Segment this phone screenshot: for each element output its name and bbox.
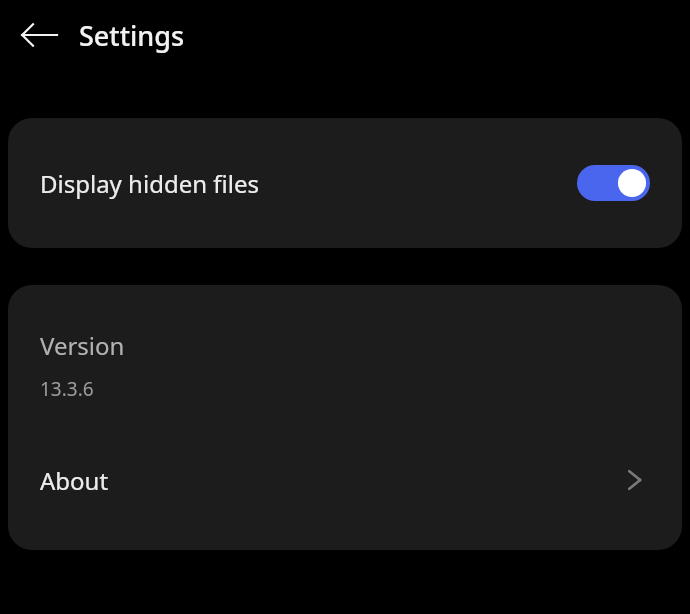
staticText: 13.3.6 (40, 376, 94, 402)
staticText: About (40, 464, 622, 497)
button[interactable]: Back (14, 10, 64, 60)
button[interactable]: About (8, 428, 682, 532)
staticText: Settings (79, 17, 185, 54)
staticText: Version (40, 329, 125, 362)
button[interactable]: Version (8, 285, 682, 402)
button[interactable]: Display hidden files (8, 118, 682, 248)
staticText: Display hidden files (40, 167, 577, 200)
button[interactable]: Display hidden files toggle (577, 165, 650, 201)
